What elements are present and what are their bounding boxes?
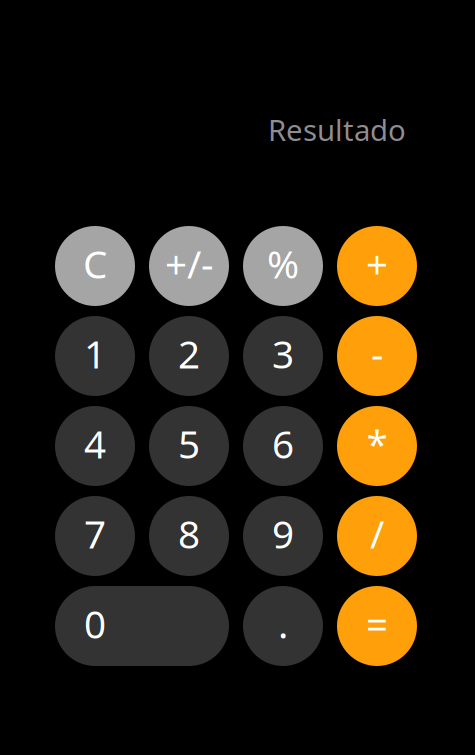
staticText: + — [366, 238, 388, 289]
button[interactable]: 5 — [149, 406, 229, 486]
staticText: - — [371, 328, 383, 379]
button[interactable]: * — [337, 406, 417, 486]
button[interactable]: 7 — [55, 496, 135, 576]
staticText: 0 — [84, 598, 106, 649]
button[interactable]: - — [337, 316, 417, 396]
staticText: 8 — [178, 508, 200, 559]
button[interactable]: 8 — [149, 496, 229, 576]
staticText: 9 — [272, 508, 294, 559]
staticText: 6 — [272, 418, 294, 469]
staticText: 4 — [84, 418, 106, 469]
staticText: 5 — [178, 418, 200, 469]
button[interactable]: +/- — [149, 226, 229, 306]
button[interactable]: 0 — [55, 586, 229, 666]
staticText: * — [366, 418, 387, 469]
button[interactable]: 2 — [149, 316, 229, 396]
button[interactable]: / — [337, 496, 417, 576]
staticText: 7 — [84, 508, 106, 559]
staticText: +/- — [165, 238, 213, 289]
staticText: = — [366, 598, 388, 649]
staticText: % — [267, 238, 299, 289]
staticText: 2 — [178, 328, 200, 379]
staticText: 3 — [272, 328, 294, 379]
button[interactable]: 9 — [243, 496, 323, 576]
button[interactable]: 1 — [55, 316, 135, 396]
button[interactable]: % — [243, 226, 323, 306]
button[interactable]: = — [337, 586, 417, 666]
staticText: / — [370, 508, 384, 559]
button[interactable]: 4 — [55, 406, 135, 486]
button[interactable]: + — [337, 226, 417, 306]
staticText: C — [83, 238, 107, 289]
button[interactable]: 3 — [243, 316, 323, 396]
staticText: . — [278, 598, 288, 649]
button[interactable]: . — [243, 586, 323, 666]
staticText: 1 — [84, 328, 106, 379]
button[interactable]: C — [55, 226, 135, 306]
staticText: Resultado — [268, 110, 406, 149]
button[interactable]: 6 — [243, 406, 323, 486]
